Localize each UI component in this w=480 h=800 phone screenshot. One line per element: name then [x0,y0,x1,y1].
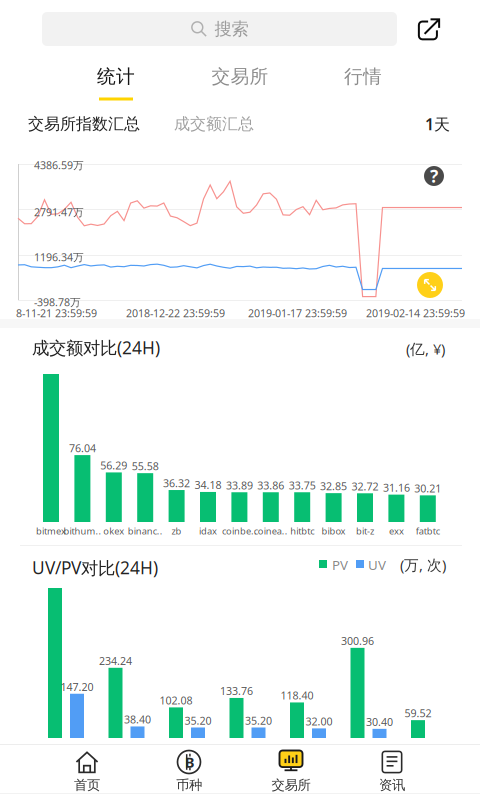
staticText: 8-11-21 23:59:59 [16,306,97,320]
staticText: (万, 次) [400,555,446,574]
staticText: 2019-01-17 23:59:59 [248,306,347,320]
staticText: 行情 [344,65,382,88]
button[interactable]: 成交额汇总 [174,112,264,136]
staticText: 33.86 [257,478,284,492]
staticText: bithum.. [63,525,101,537]
staticText: PV [332,556,348,574]
staticText: 35.20 [245,713,272,728]
staticText: ? [430,164,438,187]
staticText: 55.58 [132,459,159,473]
staticText: hitbtc [290,525,314,537]
staticText: 34.18 [194,478,221,492]
staticText: 32.00 [305,714,332,728]
button[interactable]: 交易所指数汇总 [28,112,148,136]
staticText: bibox [322,525,346,537]
staticText: -398.78万 [34,295,81,309]
staticText: 59.52 [404,706,431,720]
staticText: coinbe.. [222,525,257,537]
staticText: 32.72 [351,479,378,493]
staticText: 成交额汇总 [174,114,254,134]
button[interactable]: 交易所 [178,56,302,100]
staticText: 300.96 [341,634,374,648]
staticText: 133.76 [220,684,253,698]
staticText: 2019-02-14 23:59:59 [366,306,465,320]
staticText: 2018-12-22 23:59:59 [126,306,225,320]
button[interactable]: 交易所 [241,744,341,790]
staticText: 统计 [97,65,135,88]
button[interactable]: 分享 [412,12,446,46]
staticText: 33.89 [226,478,253,492]
button[interactable]: 行情 [301,56,425,100]
button[interactable]: 资讯 [342,744,442,790]
staticText: bitmex [36,525,66,537]
staticText: 4386.59万 [34,158,84,172]
staticText: 交易所指数汇总 [28,114,140,134]
staticText: 36.32 [163,476,190,490]
staticText: 首页 [74,777,100,793]
staticText: binanc.. [128,525,163,537]
staticText: 33.75 [289,478,316,492]
staticText: 币种 [176,777,202,793]
button[interactable]: 首页 [37,744,137,790]
staticText: 56.29 [100,458,127,472]
staticText: B [185,752,195,772]
staticText: 搜索 [214,18,248,40]
staticText: 35.20 [184,713,211,728]
staticText: 1196.34万 [34,250,84,264]
button[interactable]: 统计 [54,56,178,100]
staticText: 30.40 [366,715,393,729]
button[interactable]: 搜索 [42,12,397,46]
staticText: 资讯 [379,777,405,793]
staticText: 30.21 [414,481,441,495]
staticText: (亿, ¥) [406,339,445,358]
staticText: 102.08 [159,693,192,707]
staticText: 2791.47万 [34,205,84,219]
staticText: UV/PV对比(24H) [32,556,158,579]
staticText: 1天 [425,113,450,135]
staticText: bit-z [356,525,374,537]
button[interactable]: B [139,744,239,790]
staticText: okex [103,525,124,537]
staticText: exx [389,525,404,537]
staticText: zb [172,525,182,537]
staticText: 31.16 [383,480,410,495]
staticText: coinea.. [254,525,288,537]
staticText: 76.04 [69,441,96,455]
staticText: 交易所 [271,777,310,793]
staticText: UV [368,556,386,574]
staticText: 147.20 [60,680,93,694]
staticText: 118.40 [280,688,313,703]
button[interactable]: 全屏 [417,272,443,298]
staticText: idax [199,525,217,537]
staticText: 234.24 [99,654,132,668]
staticText: 32.85 [320,479,347,493]
staticText: 38.40 [124,712,151,727]
staticText: fatbtc [416,525,440,537]
staticText: 成交额对比(24H) [32,336,160,359]
staticText: 交易所 [211,65,268,88]
